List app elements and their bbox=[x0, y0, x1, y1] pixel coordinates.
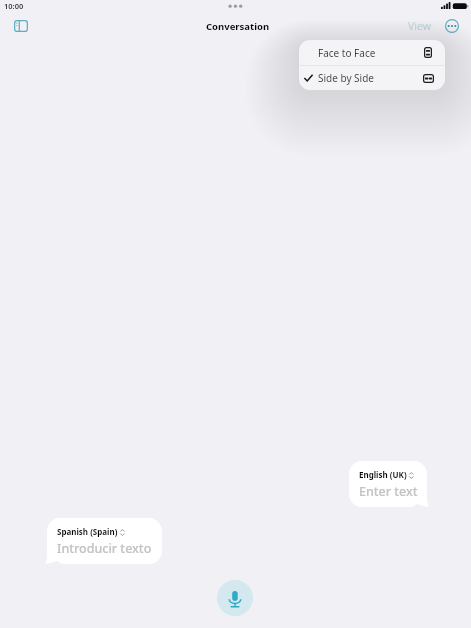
staticText: Face to Face bbox=[318, 46, 376, 60]
staticText: Introducir texto bbox=[57, 540, 152, 557]
button[interactable]: Start recording bbox=[217, 580, 253, 616]
staticText: Conversation bbox=[206, 20, 270, 33]
button[interactable]: Face to Face bbox=[299, 40, 445, 65]
staticText: 10:00 bbox=[4, 1, 24, 11]
button[interactable]: More options bbox=[440, 14, 464, 38]
staticText: Side by Side bbox=[318, 71, 374, 85]
button[interactable]: View bbox=[405, 17, 434, 35]
button[interactable]: Side by Side bbox=[299, 66, 445, 90]
button[interactable]: Show sidebar bbox=[5, 14, 36, 38]
staticText: View bbox=[408, 19, 431, 33]
button[interactable]: Spanish (Spain) bbox=[43, 518, 166, 568]
staticText: Enter text bbox=[359, 483, 418, 500]
staticText: Spanish (Spain) bbox=[57, 526, 118, 537]
button[interactable]: English (UK) bbox=[345, 461, 431, 511]
staticText: English (UK) bbox=[359, 469, 407, 480]
